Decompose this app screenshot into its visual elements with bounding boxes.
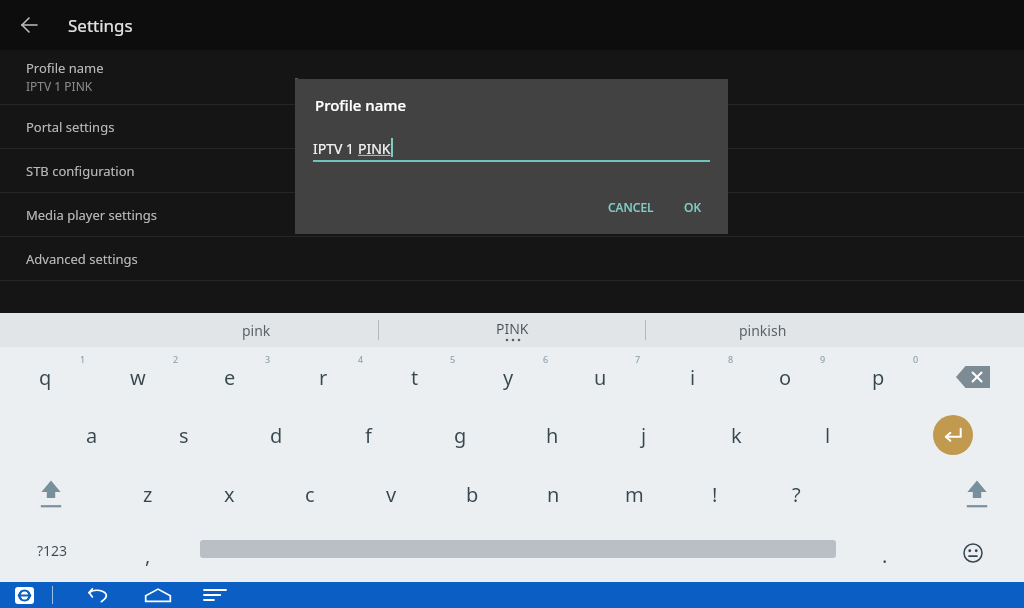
button[interactable]: u — [574, 361, 626, 393]
staticText: 5 — [450, 353, 456, 365]
staticText: h — [546, 422, 559, 449]
staticText: 4 — [358, 353, 364, 365]
button[interactable]: Profile name — [0, 50, 1024, 104]
button[interactable]: TeamViewer — [12, 586, 36, 604]
button[interactable]: a — [66, 419, 118, 451]
button[interactable]: g — [434, 419, 486, 451]
staticText: b — [466, 481, 479, 508]
staticText: 9 — [820, 353, 826, 365]
staticText: k — [731, 422, 742, 449]
staticText: c — [305, 481, 315, 508]
button[interactable]: 1 — [57, 343, 109, 375]
staticText: y — [503, 364, 514, 391]
button[interactable]: n — [527, 478, 579, 510]
button[interactable]: i — [667, 361, 719, 393]
button[interactable]: Advanced settings — [0, 237, 1024, 280]
button[interactable]: CANCEL — [598, 193, 664, 221]
button[interactable]: l — [802, 419, 854, 451]
button[interactable]: Shift — [25, 473, 77, 515]
staticText: 0 — [913, 353, 919, 365]
staticText: r — [319, 364, 328, 391]
button[interactable]: 3 — [242, 343, 294, 375]
button[interactable]: k — [710, 419, 762, 451]
staticText: z — [143, 481, 153, 508]
staticText: w — [130, 364, 146, 391]
staticText: x — [224, 481, 235, 508]
button[interactable]: t — [389, 361, 441, 393]
button[interactable]: q — [19, 361, 71, 393]
button[interactable]: m — [608, 478, 660, 510]
button[interactable]: w — [112, 361, 164, 393]
button[interactable]: d — [250, 419, 302, 451]
button[interactable]: s — [158, 419, 210, 451]
button[interactable]: o — [759, 361, 811, 393]
staticText: 6 — [543, 353, 549, 365]
staticText: s — [179, 422, 189, 449]
staticText: q — [39, 364, 52, 391]
staticText: a — [86, 422, 98, 449]
staticText: e — [224, 364, 236, 391]
button[interactable]: ?123 — [18, 532, 86, 568]
staticText: o — [779, 364, 792, 391]
button[interactable]: y — [482, 361, 534, 393]
staticText: Portal settings — [26, 118, 115, 136]
button[interactable]: Shift — [951, 473, 1003, 515]
button[interactable]: 9 — [797, 343, 849, 375]
staticText: Profile name — [26, 59, 104, 77]
staticText: f — [365, 422, 372, 449]
staticText: d — [270, 422, 283, 449]
staticText: p — [872, 364, 885, 391]
button[interactable]: ! — [689, 478, 741, 510]
button[interactable]: 7 — [612, 343, 664, 375]
button[interactable]: h — [526, 419, 578, 451]
button[interactable]: 0 — [890, 343, 942, 375]
button[interactable]: p — [852, 361, 904, 393]
button[interactable]: c — [284, 478, 336, 510]
button[interactable]: STB configuration — [0, 149, 1024, 192]
button[interactable]: pink — [135, 313, 378, 347]
button[interactable]: . — [859, 539, 911, 571]
staticText: 8 — [728, 353, 734, 365]
button[interactable]: 4 — [335, 343, 387, 375]
button[interactable]: Backspace — [947, 359, 999, 395]
staticText: . — [882, 542, 888, 569]
staticText: 1 — [80, 353, 86, 365]
button[interactable]: ? — [770, 478, 822, 510]
button[interactable]: Back — [80, 585, 116, 605]
staticText: t — [411, 364, 419, 391]
button[interactable]: Emoji — [952, 537, 994, 569]
staticText: g — [454, 422, 467, 449]
staticText: pinkish — [739, 321, 787, 340]
button[interactable]: 5 — [427, 343, 479, 375]
staticText: Media player settings — [26, 206, 158, 224]
staticText: Profile name — [315, 95, 407, 115]
button[interactable]: f — [342, 419, 394, 451]
button[interactable]: j — [618, 419, 670, 451]
button[interactable]: r — [297, 361, 349, 393]
button[interactable]: Home — [140, 585, 176, 605]
button[interactable]: OK — [672, 193, 712, 221]
button[interactable]: PINK — [379, 313, 645, 347]
button[interactable]: z — [122, 478, 174, 510]
button[interactable]: v — [365, 478, 417, 510]
staticText: PINK — [496, 319, 529, 338]
staticText: 3 — [265, 353, 271, 365]
button[interactable]: e — [204, 361, 256, 393]
button[interactable]: 2 — [150, 343, 202, 375]
button[interactable]: Enter — [929, 411, 977, 459]
button[interactable]: Portal settings — [0, 105, 1024, 148]
button[interactable]: Recent apps — [198, 585, 232, 605]
button[interactable]: Back — [14, 9, 46, 41]
button[interactable]: 8 — [705, 343, 757, 375]
button[interactable]: , — [122, 539, 174, 571]
button[interactable]: Media player settings — [0, 193, 1024, 236]
button[interactable]: b — [446, 478, 498, 510]
button[interactable]: x — [203, 478, 255, 510]
staticText: PINK — [358, 139, 391, 158]
button[interactable]: 6 — [520, 343, 572, 375]
staticText: 7 — [635, 353, 641, 365]
staticText: Settings — [68, 14, 133, 37]
staticText: IPTV 1 PINK — [26, 78, 93, 94]
button[interactable]: pinkish — [646, 313, 879, 347]
